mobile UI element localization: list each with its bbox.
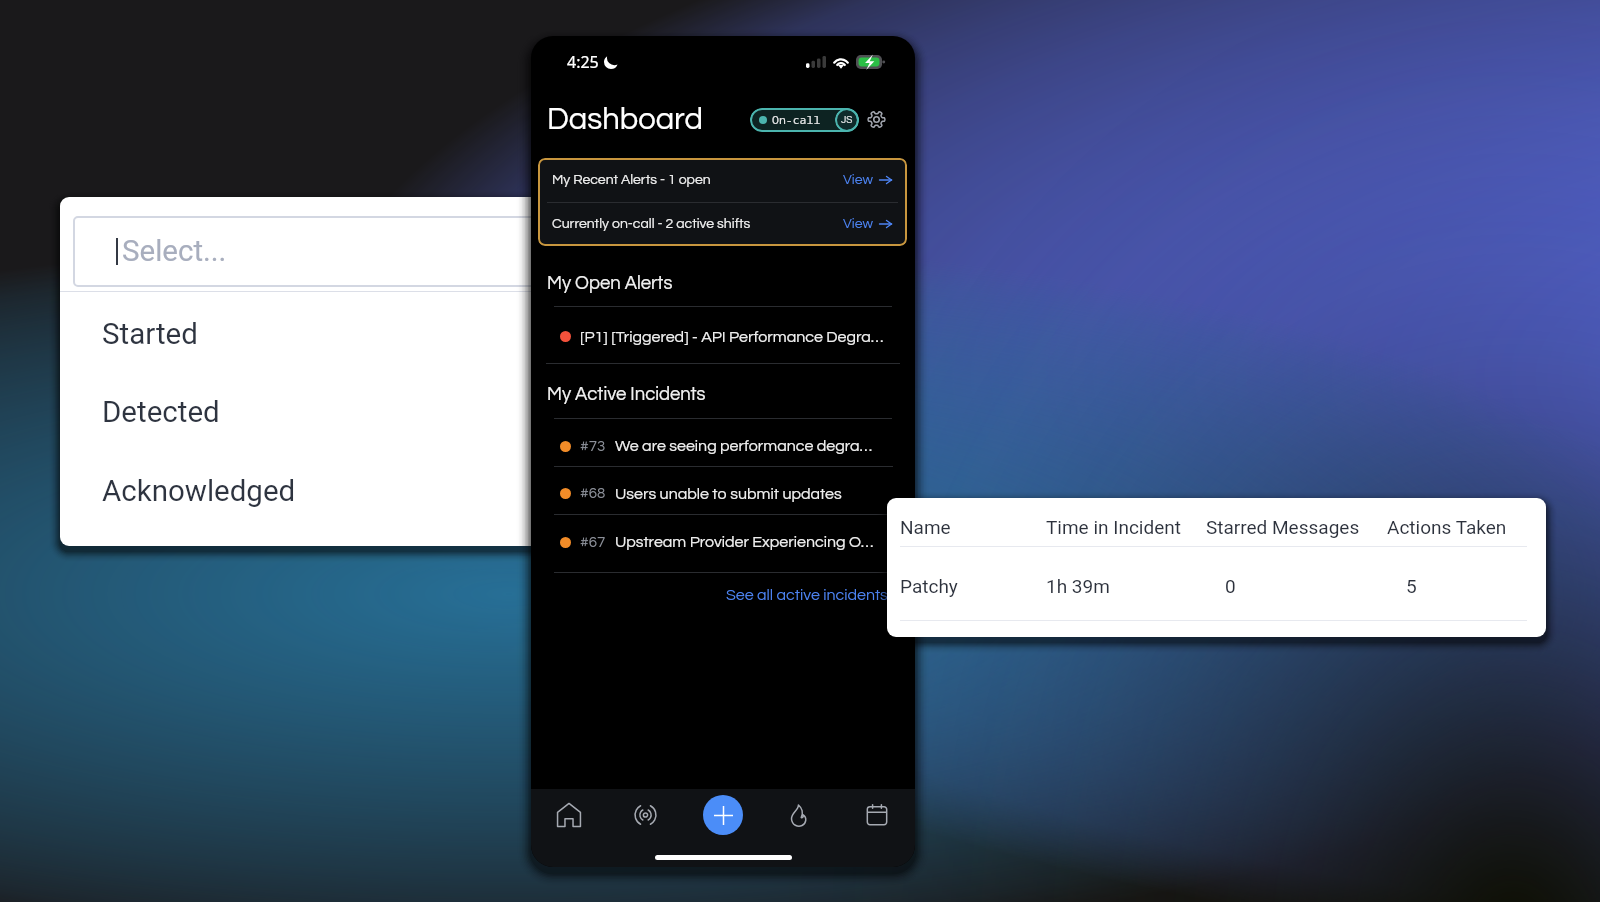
button[interactable]: Detected bbox=[60, 387, 660, 437]
button[interactable]: Home bbox=[531, 789, 607, 841]
staticText: Patchy bbox=[900, 575, 958, 597]
staticText: #67 bbox=[580, 535, 606, 550]
staticText: Upstream Provider Experiencing O… bbox=[615, 534, 874, 550]
staticText: Users unable to submit updates bbox=[615, 486, 842, 502]
button[interactable]: Alerts bbox=[607, 789, 684, 841]
staticText: My Open Alerts bbox=[547, 274, 673, 293]
staticText: #68 bbox=[580, 486, 606, 501]
staticText: View bbox=[843, 217, 873, 231]
staticText: Started bbox=[102, 317, 198, 352]
button[interactable]: Settings bbox=[867, 110, 886, 129]
staticText: Detected bbox=[102, 395, 220, 430]
staticText: My Recent Alerts - 1 open bbox=[552, 173, 711, 187]
staticText: Currently on-call - 2 active shifts bbox=[552, 217, 751, 231]
staticText: My Active Incidents bbox=[547, 385, 706, 404]
button[interactable]: [P1] [Triggered] - API Performance Degra… bbox=[531, 316, 915, 357]
button[interactable]: Create bbox=[703, 795, 743, 835]
staticText: Time in Incident bbox=[1046, 516, 1181, 538]
button[interactable]: See all active incidents bbox=[531, 579, 915, 611]
staticText: Name bbox=[900, 516, 951, 538]
staticText: Actions Taken bbox=[1387, 516, 1507, 538]
staticText: 1h 39m bbox=[1046, 575, 1110, 597]
button[interactable]: Select... bbox=[73, 216, 647, 287]
staticText: #73 bbox=[580, 439, 606, 454]
staticText: View bbox=[843, 173, 873, 187]
staticText: We are seeing performance degra… bbox=[615, 438, 873, 454]
button[interactable]: #67 bbox=[531, 522, 915, 562]
staticText: Starred Messages bbox=[1206, 516, 1360, 538]
staticText: 0 bbox=[1225, 575, 1236, 597]
button[interactable]: #73 bbox=[531, 426, 915, 466]
button[interactable]: Acknowledged bbox=[60, 466, 660, 516]
staticText: 4:25 bbox=[567, 51, 599, 73]
staticText: Select... bbox=[122, 234, 227, 269]
staticText: 5 bbox=[1406, 575, 1417, 597]
button[interactable]: #68 bbox=[531, 474, 915, 513]
staticText: [P1] [Triggered] - API Performance Degra… bbox=[580, 329, 884, 345]
staticText: Dashboard bbox=[547, 104, 703, 136]
button[interactable]: My Recent Alerts - 1 open bbox=[538, 158, 907, 202]
button[interactable]: On-call bbox=[750, 108, 859, 132]
staticText: JS bbox=[841, 115, 853, 125]
staticText: On-call bbox=[772, 112, 821, 128]
button[interactable]: Currently on-call - 2 active shifts bbox=[538, 202, 907, 246]
button[interactable]: Schedule bbox=[838, 789, 915, 841]
button[interactable]: Started bbox=[60, 309, 660, 359]
staticText: Acknowledged bbox=[102, 474, 296, 509]
staticText: See all active incidents bbox=[726, 587, 888, 603]
button[interactable]: Incidents bbox=[761, 789, 838, 841]
